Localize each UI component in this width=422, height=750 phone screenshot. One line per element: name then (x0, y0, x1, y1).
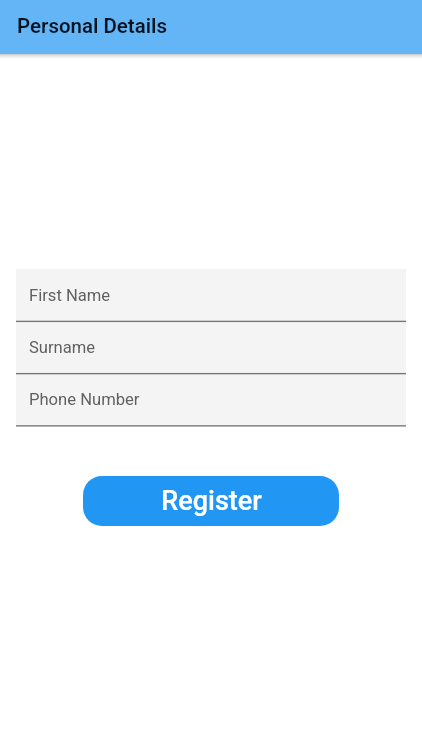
staticText: First Name (29, 286, 111, 305)
staticText: Phone Number (29, 390, 140, 409)
staticText: Register (161, 485, 262, 517)
button[interactable]: Phone Number (16, 373, 406, 425)
staticText: Personal Details (17, 14, 167, 38)
button[interactable]: First Name (16, 269, 406, 321)
button[interactable]: Surname (16, 321, 406, 373)
button[interactable]: Register (83, 476, 339, 526)
staticText: Surname (29, 338, 96, 357)
